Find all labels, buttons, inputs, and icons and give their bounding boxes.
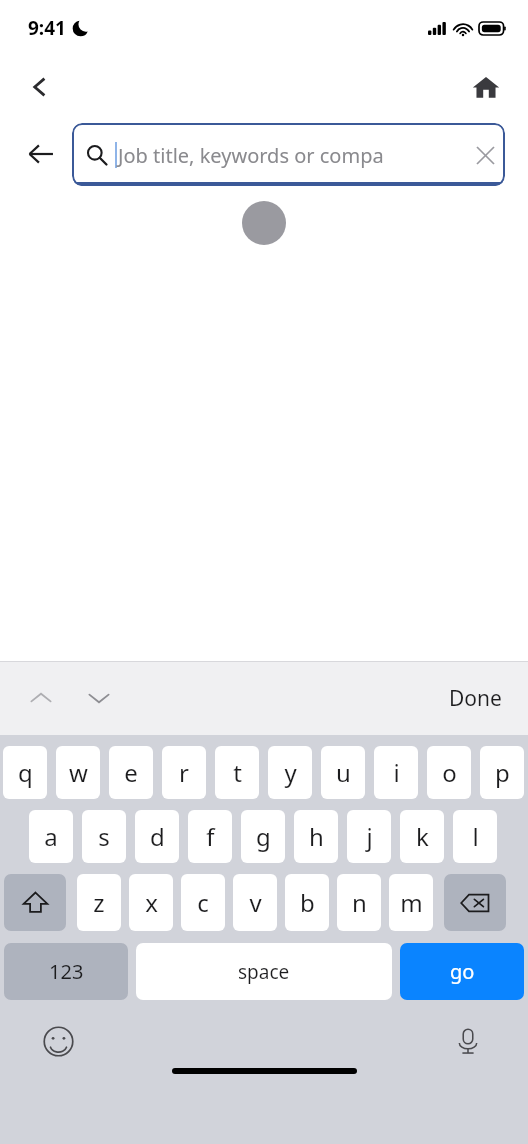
staticText: z (93, 886, 105, 919)
staticText: e (124, 756, 138, 789)
staticText: i (393, 756, 400, 789)
button[interactable]: j (347, 810, 391, 863)
staticText: v (249, 886, 262, 919)
button[interactable]: a (29, 810, 73, 863)
button[interactable]: Back (16, 63, 64, 111)
button[interactable]: t (215, 746, 259, 799)
staticText: t (233, 756, 242, 789)
button[interactable]: g (241, 810, 285, 863)
staticText: g (256, 820, 271, 853)
button[interactable]: Next field (76, 675, 122, 721)
button[interactable]: u (321, 746, 365, 799)
staticText: r (179, 756, 189, 789)
button[interactable]: h (294, 810, 338, 863)
staticText: f (206, 820, 215, 853)
button[interactable]: Shift (4, 874, 66, 931)
staticText: c (197, 886, 209, 919)
button[interactable]: v (233, 874, 277, 931)
staticText: Job title, keywords or compa (118, 142, 384, 169)
staticText: a (44, 820, 58, 853)
staticText: q (18, 756, 33, 789)
staticText: u (336, 756, 351, 789)
button[interactable]: i (374, 746, 418, 799)
staticText: w (69, 756, 88, 789)
staticText: p (495, 756, 510, 789)
button[interactable]: 123 (4, 943, 128, 1000)
staticText: x (145, 886, 158, 919)
button[interactable]: c (181, 874, 225, 931)
staticText: m (400, 886, 423, 919)
staticText: s (98, 820, 110, 853)
button[interactable]: q (3, 746, 47, 799)
button[interactable]: Job title, keywords or compa (72, 123, 505, 186)
button[interactable]: f (188, 810, 232, 863)
button[interactable]: b (285, 874, 329, 931)
staticText: d (150, 820, 165, 853)
button[interactable]: Dictation (446, 1019, 490, 1063)
button[interactable]: l (453, 810, 497, 863)
button[interactable]: e (109, 746, 153, 799)
staticText: 9:41 (28, 15, 66, 41)
button[interactable]: Emoji (36, 1019, 80, 1063)
button[interactable]: n (337, 874, 381, 931)
button[interactable]: r (162, 746, 206, 799)
staticText: 123 (49, 958, 84, 985)
staticText: h (309, 820, 324, 853)
button[interactable]: x (129, 874, 173, 931)
button[interactable]: m (389, 874, 433, 931)
button[interactable]: Home (462, 63, 510, 111)
button[interactable]: go (400, 943, 524, 1000)
button[interactable]: d (135, 810, 179, 863)
staticText: b (300, 886, 315, 919)
staticText: space (238, 959, 290, 985)
staticText: Done (449, 684, 502, 713)
button[interactable]: k (400, 810, 444, 863)
button[interactable]: s (82, 810, 126, 863)
button[interactable]: o (427, 746, 471, 799)
button[interactable]: Back (18, 131, 64, 177)
button[interactable]: Previous field (18, 675, 64, 721)
button[interactable]: p (480, 746, 524, 799)
button[interactable]: y (268, 746, 312, 799)
staticText: o (442, 756, 457, 789)
button[interactable]: Backspace (444, 874, 506, 931)
staticText: n (352, 886, 367, 919)
staticText: j (366, 820, 373, 853)
staticText: go (450, 958, 475, 985)
button[interactable]: Clear (465, 135, 505, 175)
staticText: y (284, 756, 297, 789)
staticText: k (416, 820, 429, 853)
button[interactable]: w (56, 746, 100, 799)
button[interactable]: Done (439, 678, 512, 719)
button[interactable]: z (77, 874, 121, 931)
staticText: l (472, 820, 479, 853)
button[interactable]: space (136, 943, 392, 1000)
